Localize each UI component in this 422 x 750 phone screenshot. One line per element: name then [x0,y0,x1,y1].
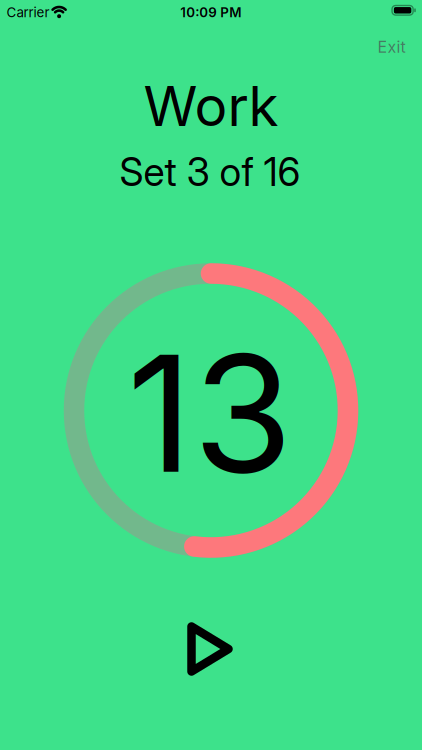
button[interactable]: Exit [325,35,405,59]
staticText: Carrier [6,5,49,20]
staticText: Work [143,74,278,138]
staticText: 10:09 PM [180,5,241,20]
staticText: Set 3 of 16 [119,149,300,195]
staticText: Exit [377,38,405,56]
staticText: 13 [127,318,293,508]
button[interactable]: Play [187,622,233,676]
